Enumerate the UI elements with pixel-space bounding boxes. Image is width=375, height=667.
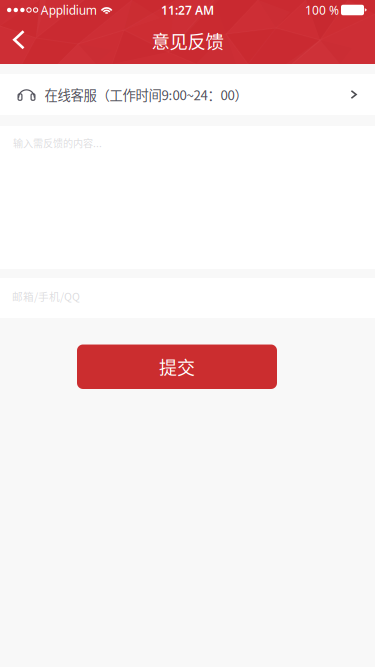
staticText: 100 % bbox=[305, 2, 339, 18]
button[interactable]: 提交 bbox=[77, 344, 277, 389]
staticText: 11:27 AM bbox=[161, 2, 214, 18]
staticText: 输入需反馈的内容... bbox=[13, 135, 102, 150]
staticText: 邮箱/手机/QQ bbox=[12, 288, 80, 304]
staticText: 提交 bbox=[159, 354, 195, 380]
staticText: 意见反馈 bbox=[151, 27, 223, 54]
staticText: Applidium bbox=[41, 2, 97, 18]
staticText: 在线客服（工作时间9:00~24：00） bbox=[44, 85, 247, 104]
button[interactable]: 在线客服（工作时间9:00~24：00） bbox=[0, 74, 375, 115]
button[interactable]: Back bbox=[0, 20, 45, 63]
